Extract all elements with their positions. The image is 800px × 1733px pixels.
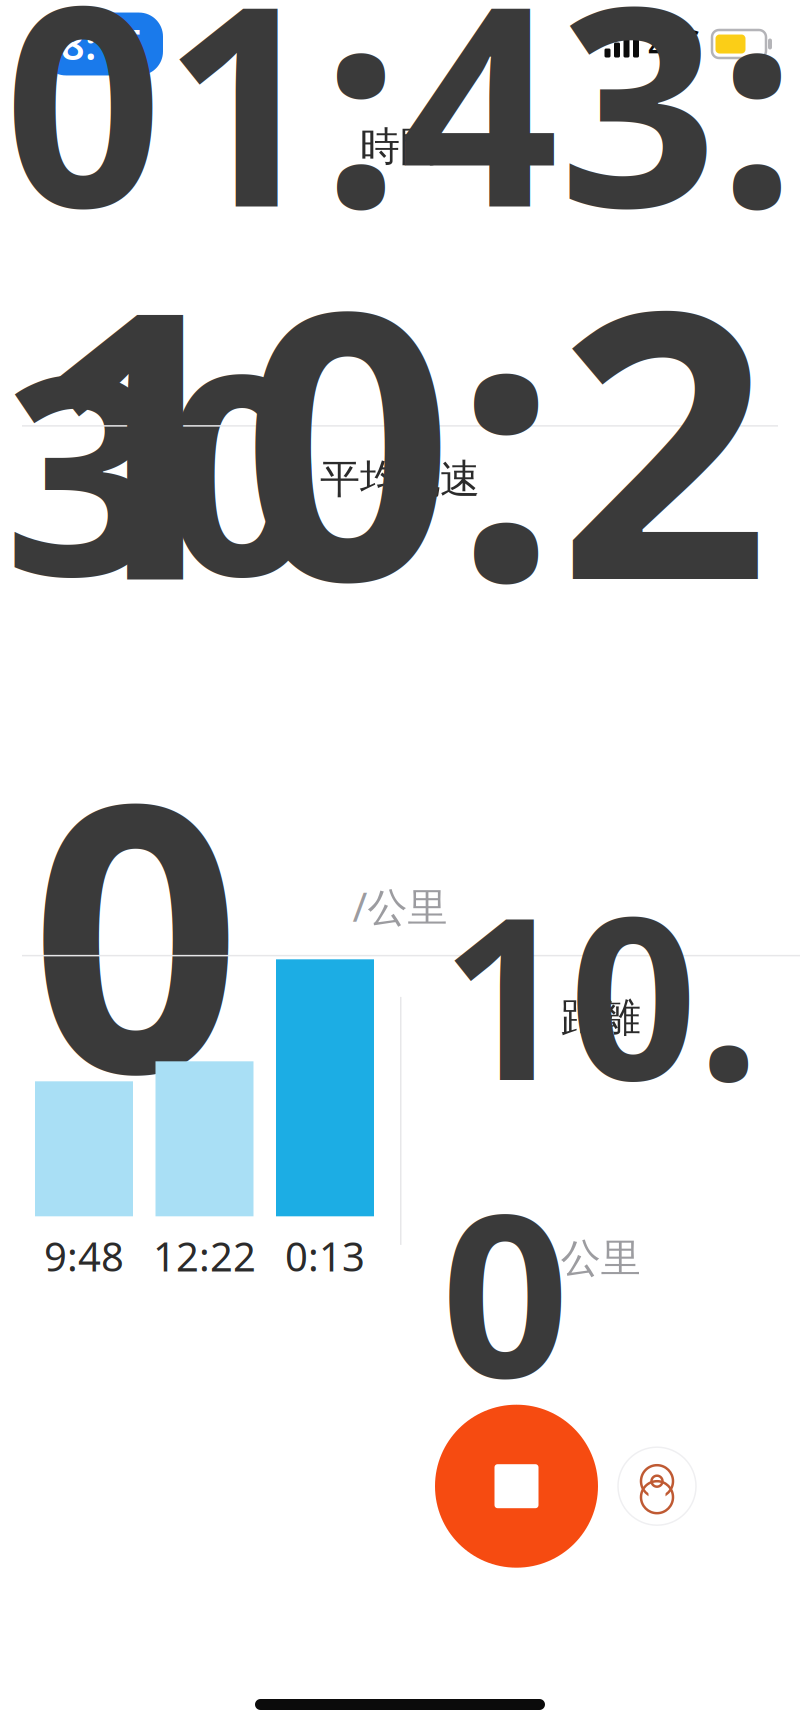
- staticText: 12:22: [153, 1229, 256, 1282]
- staticText: 9:48: [44, 1229, 124, 1282]
- staticText: 4G: [648, 17, 702, 71]
- staticText: 時間: [360, 122, 440, 171]
- staticText: 01:43:30: [4, 0, 796, 651]
- staticText: 0:13: [285, 1229, 365, 1282]
- button[interactable]: Show map: [618, 1447, 696, 1525]
- staticText: 平均配速: [320, 455, 480, 504]
- staticText: 10.0: [441, 844, 760, 1439]
- staticText: 10:20: [30, 189, 770, 1174]
- staticText: 公里: [561, 1234, 641, 1283]
- staticText: /公里: [352, 880, 447, 933]
- button[interactable]: Stop workout: [435, 1405, 598, 1568]
- staticText: 距離: [561, 993, 641, 1042]
- staticText: 8:15: [61, 17, 144, 71]
